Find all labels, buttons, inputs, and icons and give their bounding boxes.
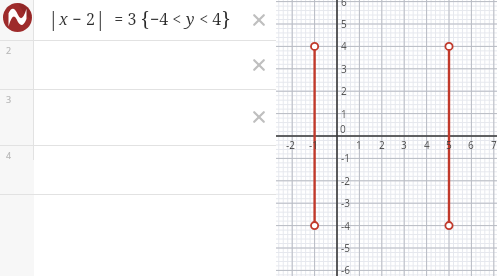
- staticText: 4: [6, 149, 12, 161]
- staticText: 4: [424, 138, 430, 152]
- staticText: 1: [356, 138, 362, 152]
- staticText: < 4: [195, 8, 222, 30]
- staticText: y: [186, 8, 195, 30]
- staticText: -1: [341, 151, 350, 165]
- staticText: 2: [379, 138, 385, 152]
- button[interactable]: Delete expression 1: [249, 10, 269, 30]
- staticText: 7: [491, 138, 497, 152]
- button[interactable]: 3: [0, 90, 276, 145]
- staticText: -5: [341, 241, 350, 255]
- staticText: 3: [401, 138, 407, 152]
- staticText: {: [141, 6, 150, 32]
- staticText: x: [59, 8, 68, 30]
- staticText: -6: [341, 263, 350, 276]
- staticText: −4 <: [150, 8, 186, 30]
- staticText: 2: [6, 44, 12, 56]
- staticText: 5: [341, 17, 347, 31]
- staticText: 3: [6, 93, 12, 105]
- staticText: 0: [340, 122, 346, 136]
- staticText: = 3: [106, 8, 141, 30]
- staticText: -3: [341, 196, 350, 210]
- staticText: -2: [341, 174, 350, 188]
- staticText: -1: [309, 138, 318, 152]
- staticText: |: [95, 6, 106, 32]
- staticText: 1: [341, 107, 347, 121]
- staticText: }: [222, 6, 231, 32]
- button[interactable]: Delete expression 3: [249, 107, 269, 127]
- staticText: 6: [341, 0, 347, 9]
- button[interactable]: 1: [0, 0, 276, 40]
- staticText: 6: [468, 138, 474, 152]
- staticText: -2: [286, 138, 295, 152]
- staticText: 1: [6, 3, 12, 15]
- button[interactable]: 2: [0, 41, 276, 89]
- staticText: 2: [341, 84, 347, 98]
- staticText: 3: [341, 62, 347, 76]
- staticText: 5: [446, 138, 452, 152]
- staticText: −: [68, 8, 86, 30]
- staticText: |: [48, 6, 59, 32]
- button[interactable]: Delete expression 2: [249, 55, 269, 75]
- button[interactable]: Graph: [276, 0, 497, 276]
- staticText: -4: [341, 219, 350, 233]
- staticText: 2: [86, 8, 95, 30]
- staticText: 4: [341, 39, 347, 53]
- button[interactable]: 4: [0, 146, 276, 194]
